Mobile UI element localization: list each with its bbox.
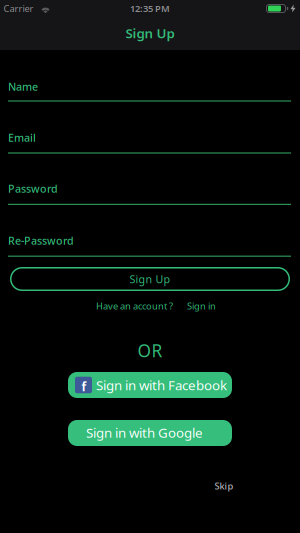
- button[interactable]: f: [68, 372, 232, 398]
- staticText: OR: [137, 339, 162, 362]
- staticText: Password: [8, 181, 58, 196]
- staticText: Sign in: [187, 300, 216, 312]
- button[interactable]: Skip: [214, 480, 233, 492]
- staticText: Have an account ?: [96, 300, 173, 312]
- button[interactable]: Sign in: [187, 300, 216, 312]
- staticText: Name: [8, 79, 38, 94]
- button[interactable]: Sign in with Google: [68, 420, 232, 446]
- staticText: f: [81, 378, 86, 394]
- staticText: Sign in with Facebook: [96, 376, 227, 394]
- staticText: Skip: [214, 480, 233, 492]
- staticText: Carrier: [3, 2, 33, 15]
- staticText: Sign Up: [129, 272, 170, 286]
- staticText: Sign in with Google: [86, 424, 203, 441]
- staticText: 12:35 PM: [130, 2, 170, 15]
- button[interactable]: Sign Up: [10, 267, 290, 291]
- staticText: Sign Up: [125, 24, 174, 42]
- staticText: Re-Password: [8, 233, 74, 248]
- staticText: Email: [8, 130, 36, 145]
